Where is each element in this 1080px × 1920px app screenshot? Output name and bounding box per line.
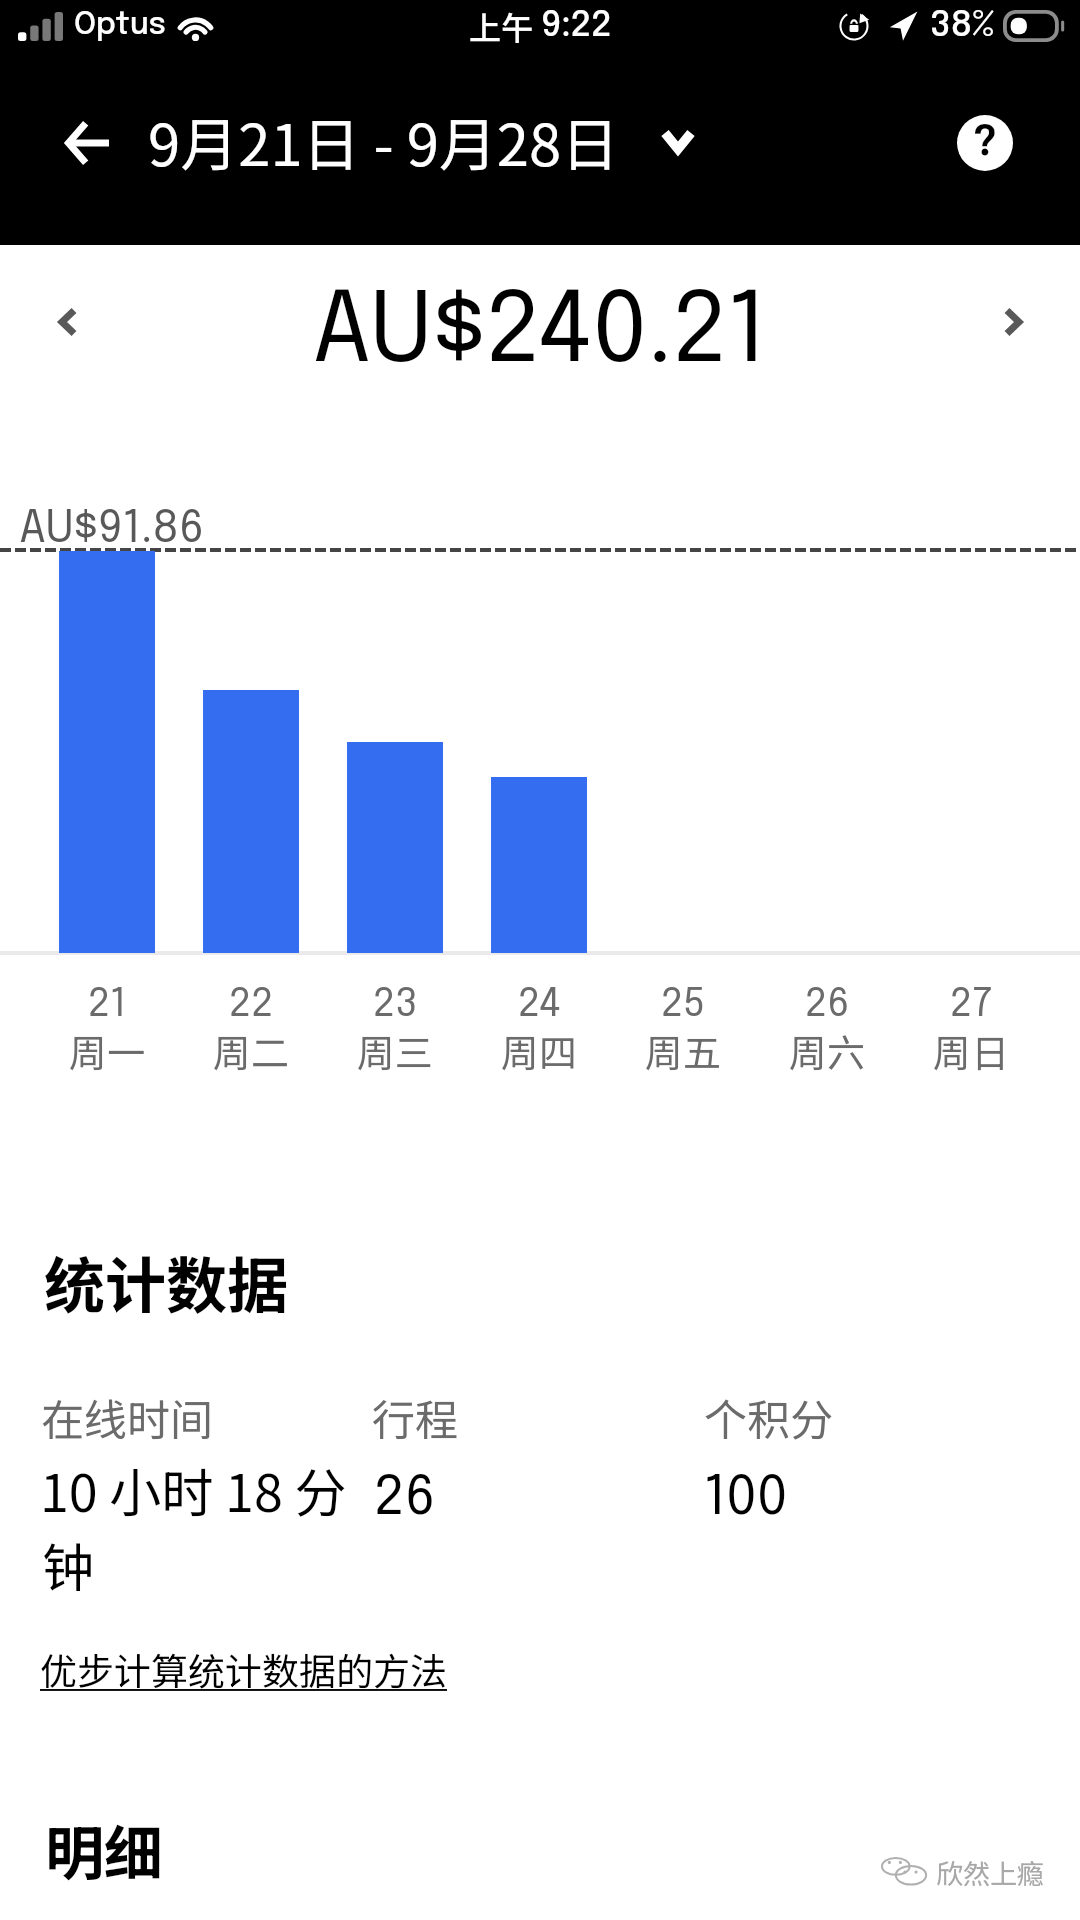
staticText: 周一: [69, 1023, 146, 1078]
staticText: 9月21日 - 9月28日: [148, 99, 620, 183]
staticText: 100: [704, 1471, 788, 1526]
staticText: 38%: [930, 8, 994, 44]
button[interactable]: Back: [34, 90, 140, 196]
button[interactable]: 9月21日 - 9月28日: [148, 88, 695, 194]
staticText: 周三: [357, 1023, 434, 1078]
staticText: 23: [373, 985, 418, 1025]
staticText: 25: [661, 985, 706, 1025]
staticText: 上午: [469, 3, 534, 49]
staticText: 统计数据: [44, 1237, 289, 1325]
button[interactable]: Previous week: [22, 276, 114, 368]
staticText: 9:22: [541, 8, 612, 44]
staticText: 10 小时 18 分: [40, 1452, 347, 1527]
button[interactable]: Next week: [967, 276, 1059, 368]
staticText: 26: [805, 985, 850, 1025]
staticText: ?: [973, 122, 997, 165]
staticText: 22: [229, 985, 274, 1025]
staticText: 个积分: [704, 1386, 833, 1448]
staticText: 26: [374, 1471, 436, 1526]
staticText: 周四: [501, 1023, 578, 1078]
staticText: 在线时间: [41, 1386, 213, 1448]
staticText: 周二: [213, 1023, 290, 1078]
staticText: 周日: [933, 1023, 1010, 1078]
staticText: Optus: [74, 10, 167, 42]
staticText: 欣然上瘾: [936, 1853, 1044, 1892]
button[interactable]: 优步计算统计数据的方法: [28, 1630, 459, 1708]
staticText: 27: [950, 985, 992, 1025]
staticText: AU$91.86: [19, 507, 205, 552]
staticText: 行程: [372, 1386, 458, 1448]
staticText: 21: [88, 985, 127, 1025]
staticText: 钟: [42, 1527, 95, 1602]
staticText: 周五: [645, 1023, 722, 1078]
staticText: 周六: [789, 1023, 866, 1078]
staticText: 优步计算统计数据的方法: [40, 1642, 447, 1696]
button[interactable]: Help: [957, 115, 1013, 171]
staticText: 明细: [45, 1807, 164, 1892]
staticText: AU$240.21: [312, 284, 768, 383]
staticText: 24: [518, 985, 561, 1025]
